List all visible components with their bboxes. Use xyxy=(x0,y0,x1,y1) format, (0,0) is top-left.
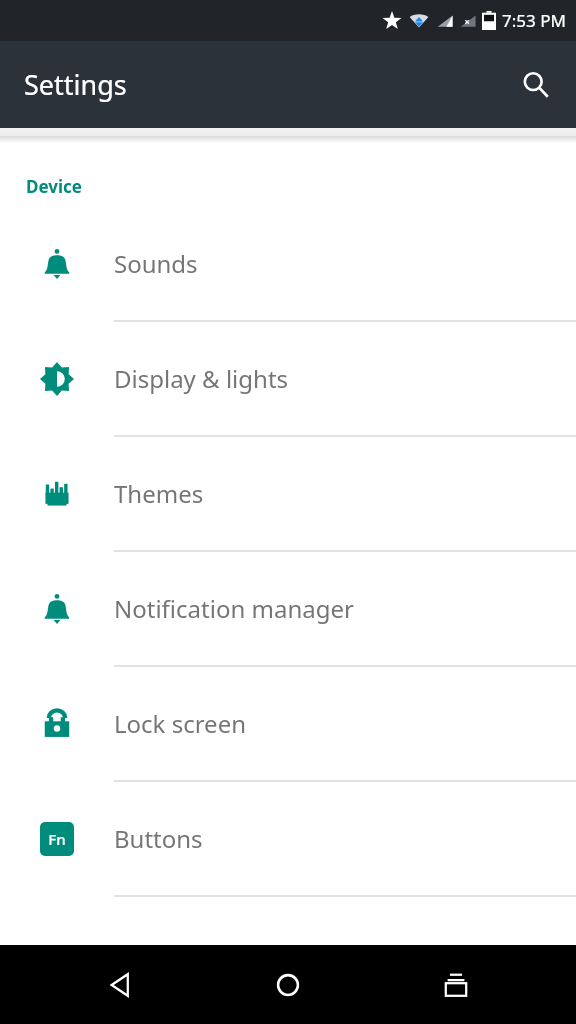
button[interactable]: Display & lights xyxy=(0,322,576,437)
button[interactable]: Back xyxy=(72,945,168,1024)
staticText: Lock screen xyxy=(114,707,247,740)
staticText: Device xyxy=(26,175,82,198)
button[interactable]: Search xyxy=(510,59,562,111)
staticText: Fn xyxy=(48,829,66,849)
staticText: 7:53 PM xyxy=(502,9,566,32)
button[interactable]: Lock screen xyxy=(0,667,576,782)
button[interactable]: Sounds xyxy=(0,207,576,322)
button[interactable]: Home xyxy=(240,945,336,1024)
staticText: Display & lights xyxy=(114,362,289,395)
staticText: Buttons xyxy=(114,822,203,855)
staticText: Sounds xyxy=(114,247,198,280)
staticText: Notification manager xyxy=(114,592,354,625)
button[interactable]: Themes xyxy=(0,437,576,552)
button[interactable]: Recents xyxy=(408,945,504,1024)
button[interactable]: Notification manager xyxy=(0,552,576,667)
staticText: Settings xyxy=(24,66,127,103)
staticText: Themes xyxy=(114,477,204,510)
button[interactable]: Fn xyxy=(0,782,576,897)
